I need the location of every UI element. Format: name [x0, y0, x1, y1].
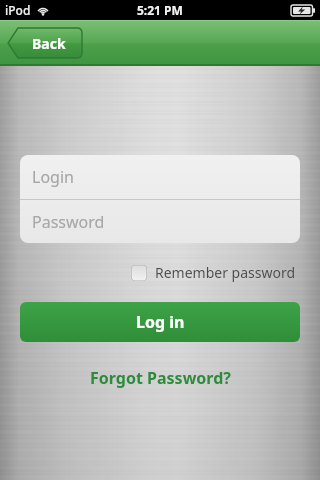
staticText: Login	[32, 166, 74, 188]
button[interactable]: Login	[20, 155, 300, 199]
staticText: iPod	[5, 2, 31, 18]
staticText: Remember password	[155, 263, 296, 282]
button[interactable]: Forgot Password?	[78, 363, 243, 393]
staticText: Password	[32, 211, 105, 233]
button[interactable]: Back	[8, 28, 82, 58]
button[interactable]: Password	[20, 200, 300, 243]
staticText: 5:21 PM	[137, 2, 183, 18]
staticText: Forgot Password?	[90, 367, 231, 389]
button[interactable]: Remember password	[127, 259, 300, 286]
button[interactable]: Log in	[20, 302, 300, 342]
staticText: Log in	[136, 311, 185, 333]
staticText: Back	[32, 34, 66, 53]
